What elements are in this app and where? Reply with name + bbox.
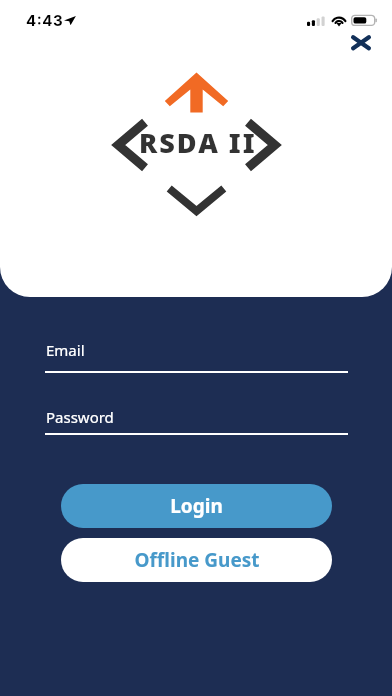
staticText: 4:43 <box>26 11 64 29</box>
button[interactable]: Offline Guest <box>61 538 332 582</box>
staticText: Login <box>170 493 223 519</box>
button[interactable]: Close <box>341 23 381 63</box>
staticText: Password <box>46 407 114 427</box>
staticText: RSDA II <box>139 124 257 161</box>
button[interactable]: Login <box>61 484 332 528</box>
staticText: Email <box>46 340 85 360</box>
staticText: Offline Guest <box>134 547 260 573</box>
